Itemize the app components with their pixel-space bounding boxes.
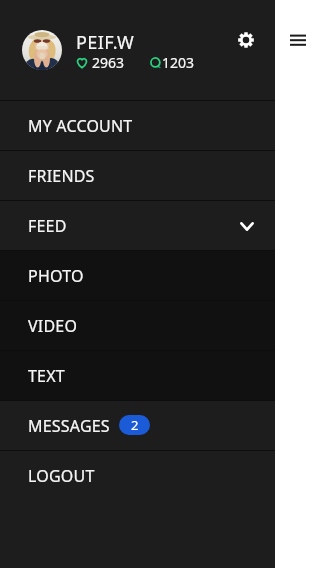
staticText: MY ACCOUNT	[28, 115, 133, 137]
staticText: MESSAGES	[28, 415, 110, 437]
button[interactable]: PHOTO	[0, 250, 275, 300]
staticText: 1203	[162, 53, 195, 72]
staticText: 2	[131, 416, 139, 434]
button[interactable]: VIDEO	[0, 300, 275, 350]
staticText: VIDEO	[28, 315, 78, 337]
button[interactable]: Open navigation menu	[282, 28, 314, 52]
button[interactable]: MESSAGES	[0, 400, 275, 450]
staticText: FEED	[28, 215, 67, 237]
button[interactable]: Profile picture	[22, 30, 62, 70]
button[interactable]: MY ACCOUNT	[0, 100, 275, 150]
staticText: LOGOUT	[28, 465, 95, 487]
staticText: PEIF.W	[76, 30, 135, 55]
button[interactable]: Settings	[238, 32, 254, 48]
staticText: FRIENDS	[28, 165, 95, 187]
button[interactable]: LOGOUT	[0, 450, 275, 500]
button[interactable]: FEED	[0, 200, 275, 250]
button[interactable]: TEXT	[0, 350, 275, 400]
staticText: 2963	[92, 53, 125, 72]
staticText: TEXT	[28, 365, 65, 387]
staticText: PHOTO	[28, 265, 84, 287]
button[interactable]: FRIENDS	[0, 150, 275, 200]
